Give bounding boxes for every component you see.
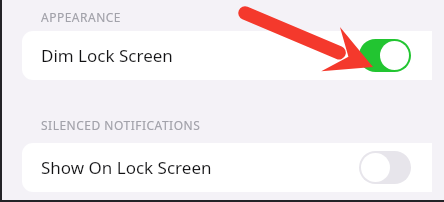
button[interactable]: Dim Lock Screen: [22, 31, 432, 80]
button[interactable]: Switch off: [359, 151, 411, 184]
staticText: Dim Lock Screen: [41, 44, 173, 67]
staticText: APPEARANCE: [41, 9, 122, 25]
button[interactable]: Show On Lock Screen: [22, 143, 432, 192]
button[interactable]: Switch on: [359, 39, 411, 72]
staticText: SILENCED NOTIFICATIONS: [41, 117, 201, 133]
staticText: Show On Lock Screen: [41, 156, 212, 179]
